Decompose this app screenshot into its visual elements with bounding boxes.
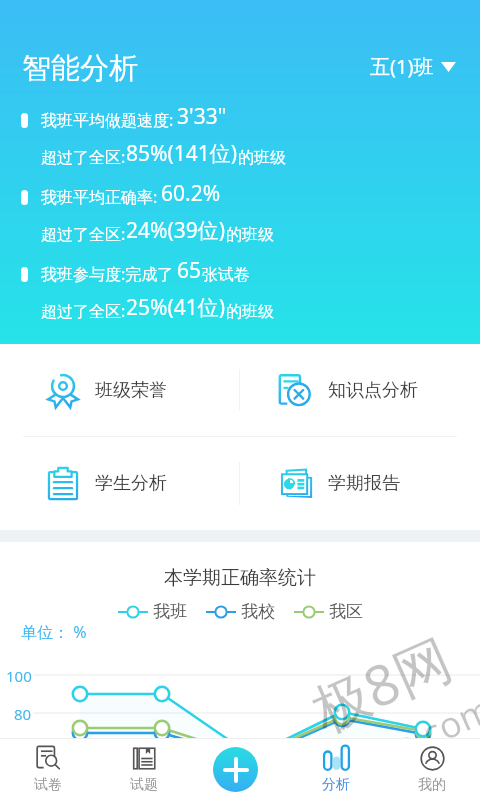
button[interactable]: 五(1)班 bbox=[370, 53, 456, 80]
staticText: 超过了全区: bbox=[41, 223, 126, 245]
staticText: 100 bbox=[6, 666, 32, 686]
staticText: 极8网 bbox=[300, 619, 463, 747]
staticText: 我班平均做题速度: bbox=[41, 109, 174, 131]
staticText: 我班参与度:完成了 bbox=[41, 263, 174, 285]
staticText: 知识点分析 bbox=[328, 379, 418, 402]
staticText: 65 bbox=[177, 256, 202, 285]
staticText: 我班平均正确率: bbox=[41, 186, 158, 208]
staticText: 智能分析 bbox=[22, 50, 138, 87]
staticText: 我的 bbox=[418, 776, 446, 794]
button[interactable]: Add bbox=[213, 747, 258, 792]
button[interactable]: 知识点分析 bbox=[240, 344, 480, 436]
staticText: 3'33" bbox=[177, 102, 227, 131]
staticText: 超过了全区: bbox=[41, 300, 126, 322]
staticText: 我班 bbox=[153, 601, 187, 622]
staticText: 的班级 bbox=[226, 302, 274, 322]
staticText: 85%(141位) bbox=[126, 139, 238, 168]
button[interactable]: 我区 bbox=[294, 601, 363, 622]
staticText: 我校 bbox=[241, 601, 275, 622]
staticText: 的班级 bbox=[238, 148, 286, 168]
button[interactable]: 我的 bbox=[384, 738, 480, 800]
staticText: 我区 bbox=[329, 601, 363, 622]
staticText: jb8app.com bbox=[299, 684, 480, 800]
staticText: 25%(41位) bbox=[126, 293, 226, 322]
button[interactable]: 学生分析 bbox=[0, 437, 239, 530]
staticText: 60.2% bbox=[161, 179, 221, 208]
staticText: 五(1)班 bbox=[370, 53, 434, 80]
staticText: 本学期正确率统计 bbox=[0, 566, 480, 590]
staticText: 24%(39位) bbox=[126, 216, 226, 245]
button[interactable]: 学期报告 bbox=[240, 437, 480, 530]
button[interactable]: 试题 bbox=[96, 738, 192, 800]
staticText: 试题 bbox=[130, 776, 158, 794]
button[interactable]: 班级荣誉 bbox=[0, 344, 239, 436]
staticText: 张试卷 bbox=[202, 265, 250, 285]
button[interactable]: 我班 bbox=[118, 601, 187, 622]
button[interactable]: 分析 bbox=[288, 738, 384, 800]
staticText: 的班级 bbox=[226, 225, 274, 245]
staticText: 超过了全区: bbox=[41, 146, 126, 168]
button[interactable]: 我校 bbox=[206, 601, 275, 622]
button[interactable]: 试卷 bbox=[0, 738, 96, 800]
staticText: 分析 bbox=[322, 776, 350, 794]
staticText: 班级荣誉 bbox=[95, 379, 167, 402]
staticText: 学期报告 bbox=[328, 472, 400, 495]
staticText: 学生分析 bbox=[95, 472, 167, 495]
staticText: 80 bbox=[14, 704, 32, 724]
staticText: 单位： % bbox=[21, 621, 87, 643]
staticText: 试卷 bbox=[34, 776, 62, 794]
